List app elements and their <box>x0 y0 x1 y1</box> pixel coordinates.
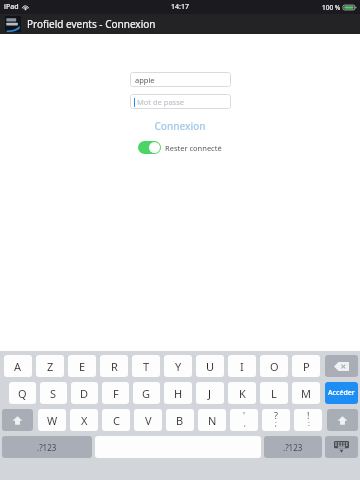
button[interactable]: ? <box>262 409 290 431</box>
staticText: 14:17 <box>171 2 189 12</box>
staticText: iPad <box>4 2 19 12</box>
staticText: .?123 <box>283 442 303 453</box>
button[interactable]: apple <box>130 72 231 87</box>
staticText: Connexion <box>154 119 206 133</box>
staticText: F <box>113 386 119 401</box>
button[interactable]: ' <box>230 409 258 431</box>
staticText: Z <box>47 359 54 374</box>
button[interactable]: C <box>102 409 130 431</box>
button[interactable]: I <box>228 355 256 377</box>
button[interactable]: Connexion <box>146 117 214 135</box>
staticText: G <box>142 386 151 401</box>
staticText: V <box>145 413 152 428</box>
button[interactable]: Rester connecté <box>138 141 222 154</box>
button[interactable]: M <box>292 382 320 404</box>
staticText: Accéder <box>328 388 355 398</box>
staticText: T <box>143 359 150 374</box>
staticText: H <box>174 386 183 401</box>
staticText: ! <box>307 409 310 421</box>
button[interactable]: Hide keyboard <box>325 436 358 458</box>
staticText: C <box>113 413 120 428</box>
staticText: apple <box>135 75 155 85</box>
staticText: O <box>270 359 279 374</box>
staticText: M <box>301 386 311 401</box>
staticText: Rester connecté <box>165 143 222 153</box>
button[interactable]: .?123 <box>2 436 92 458</box>
button[interactable]: Q <box>9 382 36 404</box>
button[interactable]: P <box>292 355 320 377</box>
staticText: Profield events - Connexion <box>27 17 156 31</box>
button[interactable]: D <box>71 382 98 404</box>
staticText: B <box>176 413 184 428</box>
button[interactable]: S <box>40 382 67 404</box>
button[interactable]: Shift <box>327 409 358 431</box>
staticText: L <box>271 386 277 401</box>
button[interactable]: H <box>164 382 192 404</box>
staticText: : <box>308 419 310 429</box>
staticText: K <box>239 386 246 401</box>
button[interactable]: G <box>133 382 160 404</box>
staticText: S <box>50 386 57 401</box>
button[interactable]: A <box>4 355 32 377</box>
button[interactable]: K <box>228 382 256 404</box>
staticText: N <box>208 413 217 428</box>
staticText: W <box>47 413 58 428</box>
button[interactable]: Mot de passe <box>130 94 231 109</box>
staticText: 100 % <box>322 3 341 12</box>
button[interactable]: E <box>68 355 96 377</box>
button[interactable]: T <box>132 355 160 377</box>
button[interactable]: Y <box>164 355 192 377</box>
button[interactable]: Shift <box>2 409 33 431</box>
button[interactable]: Profield events logo <box>5 16 21 32</box>
staticText: , <box>244 419 246 429</box>
button[interactable]: R <box>100 355 128 377</box>
staticText: E <box>79 359 86 374</box>
staticText: ? <box>274 409 278 421</box>
button[interactable]: N <box>198 409 226 431</box>
button[interactable]: U <box>196 355 224 377</box>
staticText: Y <box>175 359 182 374</box>
staticText: A <box>14 359 22 374</box>
staticText: ; <box>275 419 277 429</box>
button[interactable]: F <box>102 382 129 404</box>
button[interactable]: V <box>134 409 162 431</box>
button[interactable]: L <box>260 382 288 404</box>
staticText: P <box>303 359 310 374</box>
staticText: .?123 <box>37 442 57 453</box>
staticText: ' <box>243 409 246 421</box>
button[interactable]: W <box>38 409 66 431</box>
staticText: U <box>206 359 215 374</box>
staticText: D <box>80 386 89 401</box>
button[interactable]: .?123 <box>264 436 322 458</box>
button[interactable]: ! <box>294 409 322 431</box>
button[interactable]: J <box>196 382 224 404</box>
staticText: J <box>208 386 212 401</box>
button[interactable]: Backspace <box>325 355 358 377</box>
button[interactable]: O <box>260 355 288 377</box>
staticText: X <box>81 413 88 428</box>
button[interactable]: B <box>166 409 194 431</box>
staticText: R <box>111 359 118 374</box>
button[interactable]: Accéder <box>325 382 358 404</box>
staticText: Q <box>18 386 27 401</box>
button[interactable]: X <box>70 409 98 431</box>
staticText: Mot de passe <box>137 97 185 107</box>
button[interactable]: Z <box>36 355 64 377</box>
staticText: I <box>240 359 244 374</box>
